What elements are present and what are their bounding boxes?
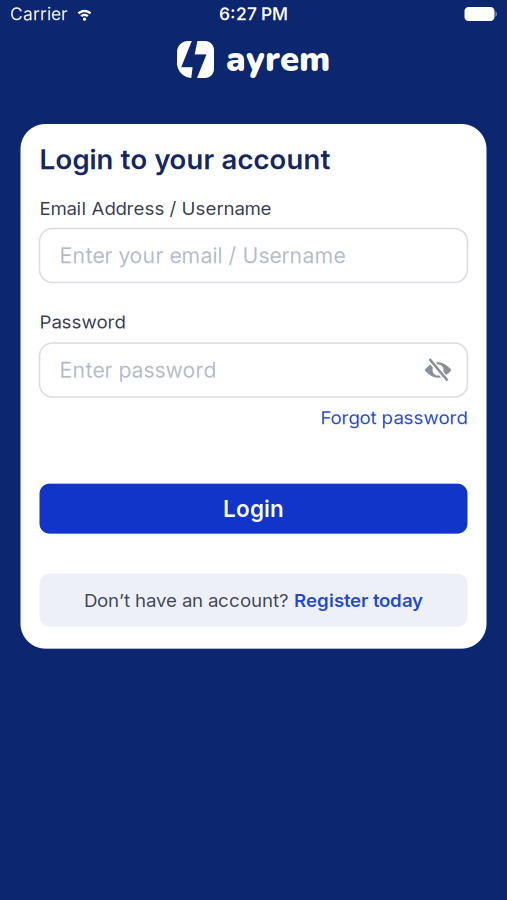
staticText: Login to your account xyxy=(39,142,330,176)
staticText: Register today xyxy=(294,589,423,611)
staticText: Enter your email / Username xyxy=(59,243,345,268)
staticText: Enter password xyxy=(59,357,216,383)
staticText: Password xyxy=(39,310,125,333)
staticText: Forgot password xyxy=(320,406,467,429)
staticText: Email Address / Username xyxy=(39,197,271,219)
staticText: 6:27 PM xyxy=(219,3,288,24)
staticText: Login xyxy=(223,495,284,522)
staticText: Don’t have an account? xyxy=(84,589,289,611)
staticText: Carrier xyxy=(10,3,68,24)
staticText: ayrem xyxy=(226,36,330,83)
